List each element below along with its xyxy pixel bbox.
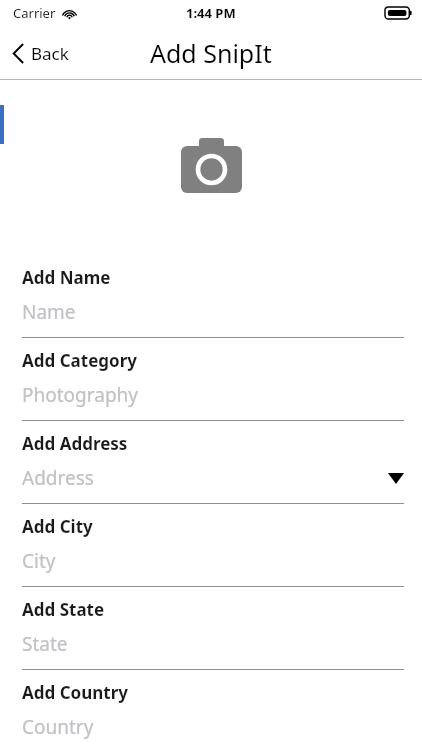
staticText: Add Name <box>22 266 111 289</box>
staticText: Back <box>31 42 69 65</box>
staticText: Add State <box>22 598 105 621</box>
staticText: Country <box>22 714 94 740</box>
button[interactable]: Add State <box>0 593 422 676</box>
staticText: Add Country <box>22 681 128 704</box>
staticText: Add SnipIt <box>150 36 272 70</box>
staticText: City <box>22 548 56 574</box>
button[interactable]: Add photo <box>175 132 248 199</box>
button[interactable]: Add Category <box>0 344 422 427</box>
staticText: Address <box>22 465 94 491</box>
staticText: Add Category <box>22 349 137 372</box>
button[interactable]: Add Country <box>0 676 422 750</box>
button[interactable]: Back <box>0 26 83 80</box>
staticText: Add City <box>22 515 93 538</box>
staticText: State <box>22 631 68 657</box>
button[interactable]: Add Name <box>0 261 422 344</box>
staticText: Name <box>22 299 76 325</box>
staticText: Add Address <box>22 432 128 455</box>
staticText: Photography <box>22 382 139 408</box>
staticText: 1:44 PM <box>186 4 236 22</box>
button[interactable]: Add Address <box>0 427 422 510</box>
staticText: Carrier <box>13 4 56 22</box>
button[interactable]: Add City <box>0 510 422 593</box>
button[interactable]: Select address <box>388 473 404 484</box>
